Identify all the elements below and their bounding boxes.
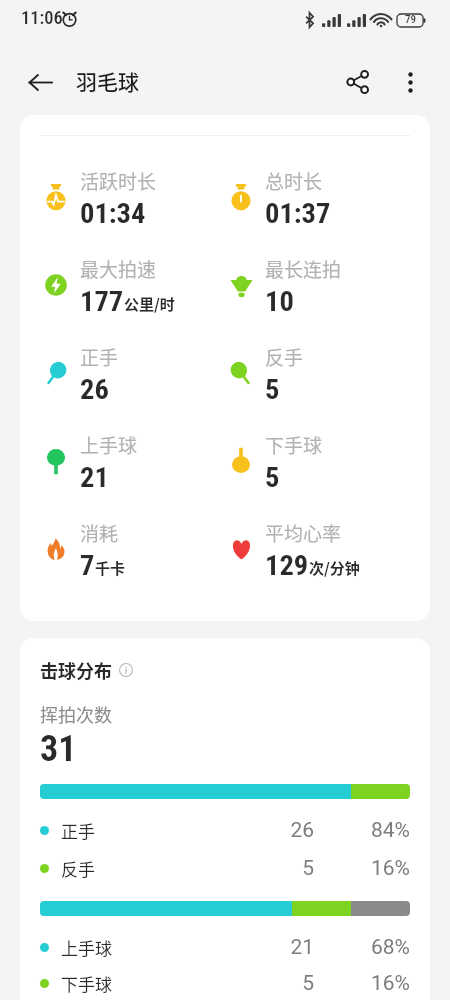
staticText: 上手球 xyxy=(80,431,138,459)
staticText: 16% xyxy=(314,856,410,881)
staticText: 反手 xyxy=(265,343,304,371)
staticText: 总时长 xyxy=(265,167,323,195)
button[interactable]: 下手球 xyxy=(40,967,410,999)
button[interactable]: 上手球 xyxy=(40,931,410,963)
staticText: 26 xyxy=(80,373,109,406)
staticText: 活跃时长 xyxy=(80,167,157,195)
staticText: 挥拍次数 xyxy=(40,701,112,727)
staticText: 上手球 xyxy=(61,935,112,960)
button[interactable]: More options xyxy=(386,58,434,106)
staticText: 01:37 xyxy=(265,197,331,230)
staticText: 正手 xyxy=(61,818,95,843)
staticText: 正手 xyxy=(80,343,119,371)
staticText: 反手 xyxy=(61,856,95,881)
button[interactable]: Info xyxy=(119,663,133,677)
button[interactable]: 总时长 xyxy=(225,167,410,233)
button[interactable]: 平均心率 xyxy=(225,519,410,585)
staticText: 84% xyxy=(314,818,410,843)
staticText: 下手球 xyxy=(61,971,112,996)
button[interactable]: 下手球 xyxy=(225,431,410,497)
staticText: 次/分钟 xyxy=(309,557,360,579)
button[interactable]: 正手 xyxy=(40,814,410,846)
staticText: 21 xyxy=(80,461,109,494)
staticText: 下手球 xyxy=(265,431,323,459)
staticText: 公里/时 xyxy=(124,293,175,315)
staticText: 129 xyxy=(265,549,309,582)
button[interactable]: 反手 xyxy=(40,852,410,884)
staticText: 7 xyxy=(80,549,95,582)
button[interactable]: 上手球 xyxy=(40,431,225,497)
button[interactable]: 反手 xyxy=(225,343,410,409)
staticText: 26 xyxy=(254,818,314,843)
staticText: 68% xyxy=(314,935,410,960)
button[interactable]: Share xyxy=(334,58,382,106)
staticText: 羽毛球 xyxy=(76,66,139,96)
staticText: 最大拍速 xyxy=(80,255,157,283)
staticText: 16% xyxy=(314,971,410,996)
staticText: 5 xyxy=(265,461,280,494)
staticText: 01:34 xyxy=(80,197,146,230)
button[interactable]: 正手 xyxy=(40,343,225,409)
button[interactable]: 消耗 xyxy=(40,519,225,585)
staticText: 千卡 xyxy=(95,557,126,579)
staticText: 11:06 xyxy=(21,7,63,29)
staticText: 5 xyxy=(265,373,280,406)
staticText: 最长连拍 xyxy=(265,255,342,283)
staticText: 31 xyxy=(40,728,77,770)
staticText: 消耗 xyxy=(80,519,119,547)
button[interactable]: 活跃时长 xyxy=(40,167,225,233)
button[interactable]: 最大拍速 xyxy=(40,255,225,321)
staticText: 177 xyxy=(80,285,124,318)
staticText: 击球分布 xyxy=(40,657,112,683)
staticText: 10 xyxy=(265,285,294,318)
staticText: 5 xyxy=(254,971,314,996)
staticText: 平均心率 xyxy=(265,519,342,547)
button[interactable]: 最长连拍 xyxy=(225,255,410,321)
staticText: 79 xyxy=(405,13,416,26)
staticText: 5 xyxy=(254,856,314,881)
staticText: 21 xyxy=(254,935,314,960)
button[interactable]: Back xyxy=(16,58,64,106)
